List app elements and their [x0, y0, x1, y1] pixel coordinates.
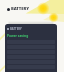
staticText: BATTERY — [10, 27, 22, 31]
button[interactable]: BATTERY — [7, 6, 29, 12]
staticText: Power saving — [7, 34, 29, 38]
button[interactable]: BATTERY — [7, 27, 22, 31]
staticText: BATTERY — [11, 6, 29, 12]
